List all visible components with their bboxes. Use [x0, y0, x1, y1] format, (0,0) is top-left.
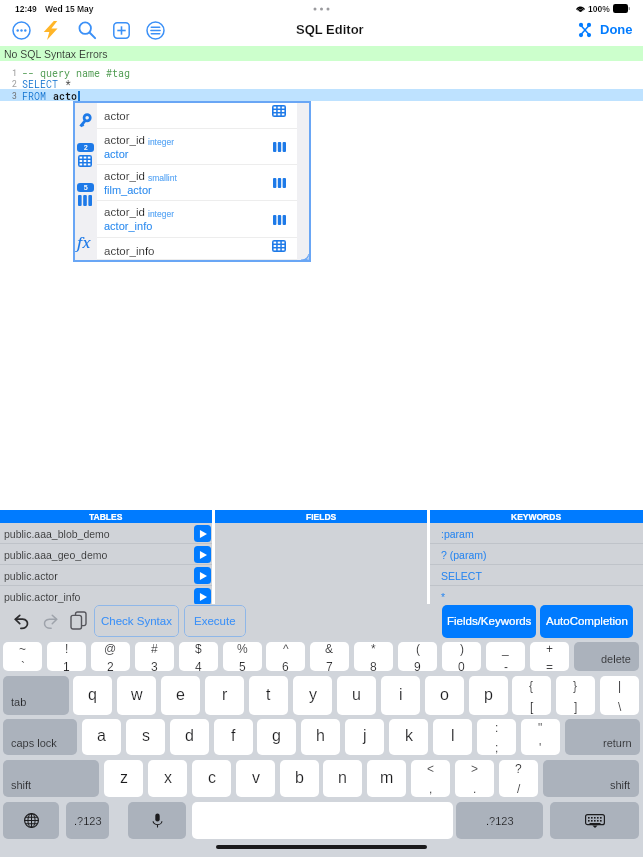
button[interactable]: .?123 — [456, 802, 543, 839]
staticText: = — [546, 660, 554, 671]
button[interactable]: o — [425, 676, 464, 715]
button[interactable]: c — [192, 760, 231, 797]
button[interactable]: Insert public.aaa_blob_demo — [194, 525, 211, 542]
button[interactable]: public.actor — [0, 565, 212, 586]
button[interactable]: # — [135, 642, 174, 671]
button[interactable]: s — [126, 719, 165, 755]
button[interactable]: e — [161, 676, 200, 715]
button[interactable]: w — [117, 676, 156, 715]
button[interactable]: Check Syntax — [94, 605, 179, 637]
button[interactable]: actor_info — [97, 238, 297, 260]
button[interactable]: & — [310, 642, 349, 671]
button[interactable]: AutoCompletion — [540, 605, 633, 638]
button[interactable]: Insert public.aaa_geo_demo — [194, 546, 211, 563]
button[interactable]: h — [301, 719, 340, 755]
button[interactable]: < — [411, 760, 450, 797]
button[interactable]: :param — [430, 523, 643, 544]
button[interactable]: v — [236, 760, 275, 797]
staticText: public.actor — [4, 570, 58, 582]
button[interactable]: " — [521, 719, 560, 755]
button[interactable]: return — [565, 719, 640, 755]
button[interactable]: .?123 — [66, 802, 109, 839]
button[interactable]: ! — [47, 642, 86, 671]
button[interactable]: actor_id — [97, 129, 297, 165]
button[interactable]: a — [82, 719, 121, 755]
button[interactable]: tab — [3, 676, 69, 715]
button[interactable]: Undo — [15, 615, 29, 629]
staticText: ` — [21, 660, 25, 671]
button[interactable]: SELECT — [430, 565, 643, 586]
staticText: :param — [441, 528, 474, 540]
button[interactable]: { — [512, 676, 551, 715]
button[interactable]: % — [223, 642, 262, 671]
button[interactable]: FIELDS — [215, 510, 427, 523]
button[interactable]: actor_id — [97, 201, 297, 238]
button[interactable]: ( — [398, 642, 437, 671]
button[interactable]: : — [477, 719, 516, 755]
button[interactable]: Run query — [40, 20, 61, 41]
button[interactable]: Fields/Keywords — [442, 605, 536, 638]
button[interactable]: Search — [77, 20, 97, 40]
button[interactable]: y — [293, 676, 332, 715]
button[interactable]: q — [73, 676, 112, 715]
button[interactable]: KEYWORDS — [430, 510, 643, 523]
button[interactable]: u — [337, 676, 376, 715]
button[interactable]: ) — [442, 642, 481, 671]
button[interactable]: r — [205, 676, 244, 715]
button[interactable]: public.actor_info — [0, 586, 212, 607]
button[interactable]: n — [323, 760, 362, 797]
button[interactable]: delete — [574, 642, 639, 671]
staticText: public.aaa_geo_demo — [4, 549, 108, 561]
button[interactable]: | — [600, 676, 639, 715]
button[interactable]: Redo — [43, 615, 57, 629]
button[interactable]: public.aaa_blob_demo — [0, 523, 212, 544]
button[interactable]: Dictate — [128, 802, 186, 839]
button[interactable]: > — [455, 760, 494, 797]
button[interactable]: actor — [97, 103, 297, 129]
button[interactable]: ~ — [3, 642, 42, 671]
staticText: c — [208, 769, 216, 787]
button[interactable]: b — [280, 760, 319, 797]
button[interactable]: Connections — [575, 20, 595, 40]
button[interactable]: shift — [3, 760, 99, 797]
button[interactable]: Done — [600, 22, 633, 37]
button[interactable]: l — [433, 719, 472, 755]
button[interactable]: ? — [499, 760, 538, 797]
button[interactable]: Change keyboard — [3, 802, 59, 839]
button[interactable]: p — [469, 676, 508, 715]
button[interactable]: x — [148, 760, 187, 797]
button[interactable]: m — [367, 760, 406, 797]
button[interactable]: Insert public.actor — [194, 567, 211, 584]
button[interactable]: f — [214, 719, 253, 755]
button[interactable]: g — [257, 719, 296, 755]
button[interactable]: actor_id — [97, 165, 297, 201]
button[interactable]: z — [104, 760, 143, 797]
button[interactable]: + — [530, 642, 569, 671]
button[interactable]: * — [430, 586, 643, 607]
staticText: FIELDS — [306, 512, 337, 521]
button[interactable]: @ — [91, 642, 130, 671]
button[interactable]: shift — [543, 760, 639, 797]
button[interactable]: j — [345, 719, 384, 755]
button[interactable]: k — [389, 719, 428, 755]
button[interactable]: public.aaa_geo_demo — [0, 544, 212, 565]
button[interactable]: More — [11, 20, 31, 40]
button[interactable]: Hide keyboard — [550, 802, 639, 839]
button[interactable]: t — [249, 676, 288, 715]
button[interactable]: caps lock — [3, 719, 77, 755]
button[interactable]: Execute — [184, 605, 246, 637]
button[interactable]: $ — [179, 642, 218, 671]
button[interactable]: } — [556, 676, 595, 715]
button[interactable]: i — [381, 676, 420, 715]
button[interactable]: Add — [111, 20, 131, 40]
button[interactable]: Copy — [71, 612, 86, 629]
button[interactable]: TABLES — [0, 510, 212, 523]
button[interactable]: _ — [486, 642, 525, 671]
button[interactable]: d — [170, 719, 209, 755]
button[interactable]: ^ — [266, 642, 305, 671]
button[interactable]: Menu — [145, 20, 165, 40]
button[interactable]: Insert public.actor_info — [194, 588, 211, 605]
button[interactable]: * — [354, 642, 393, 671]
button[interactable]: ? (param) — [430, 544, 643, 565]
